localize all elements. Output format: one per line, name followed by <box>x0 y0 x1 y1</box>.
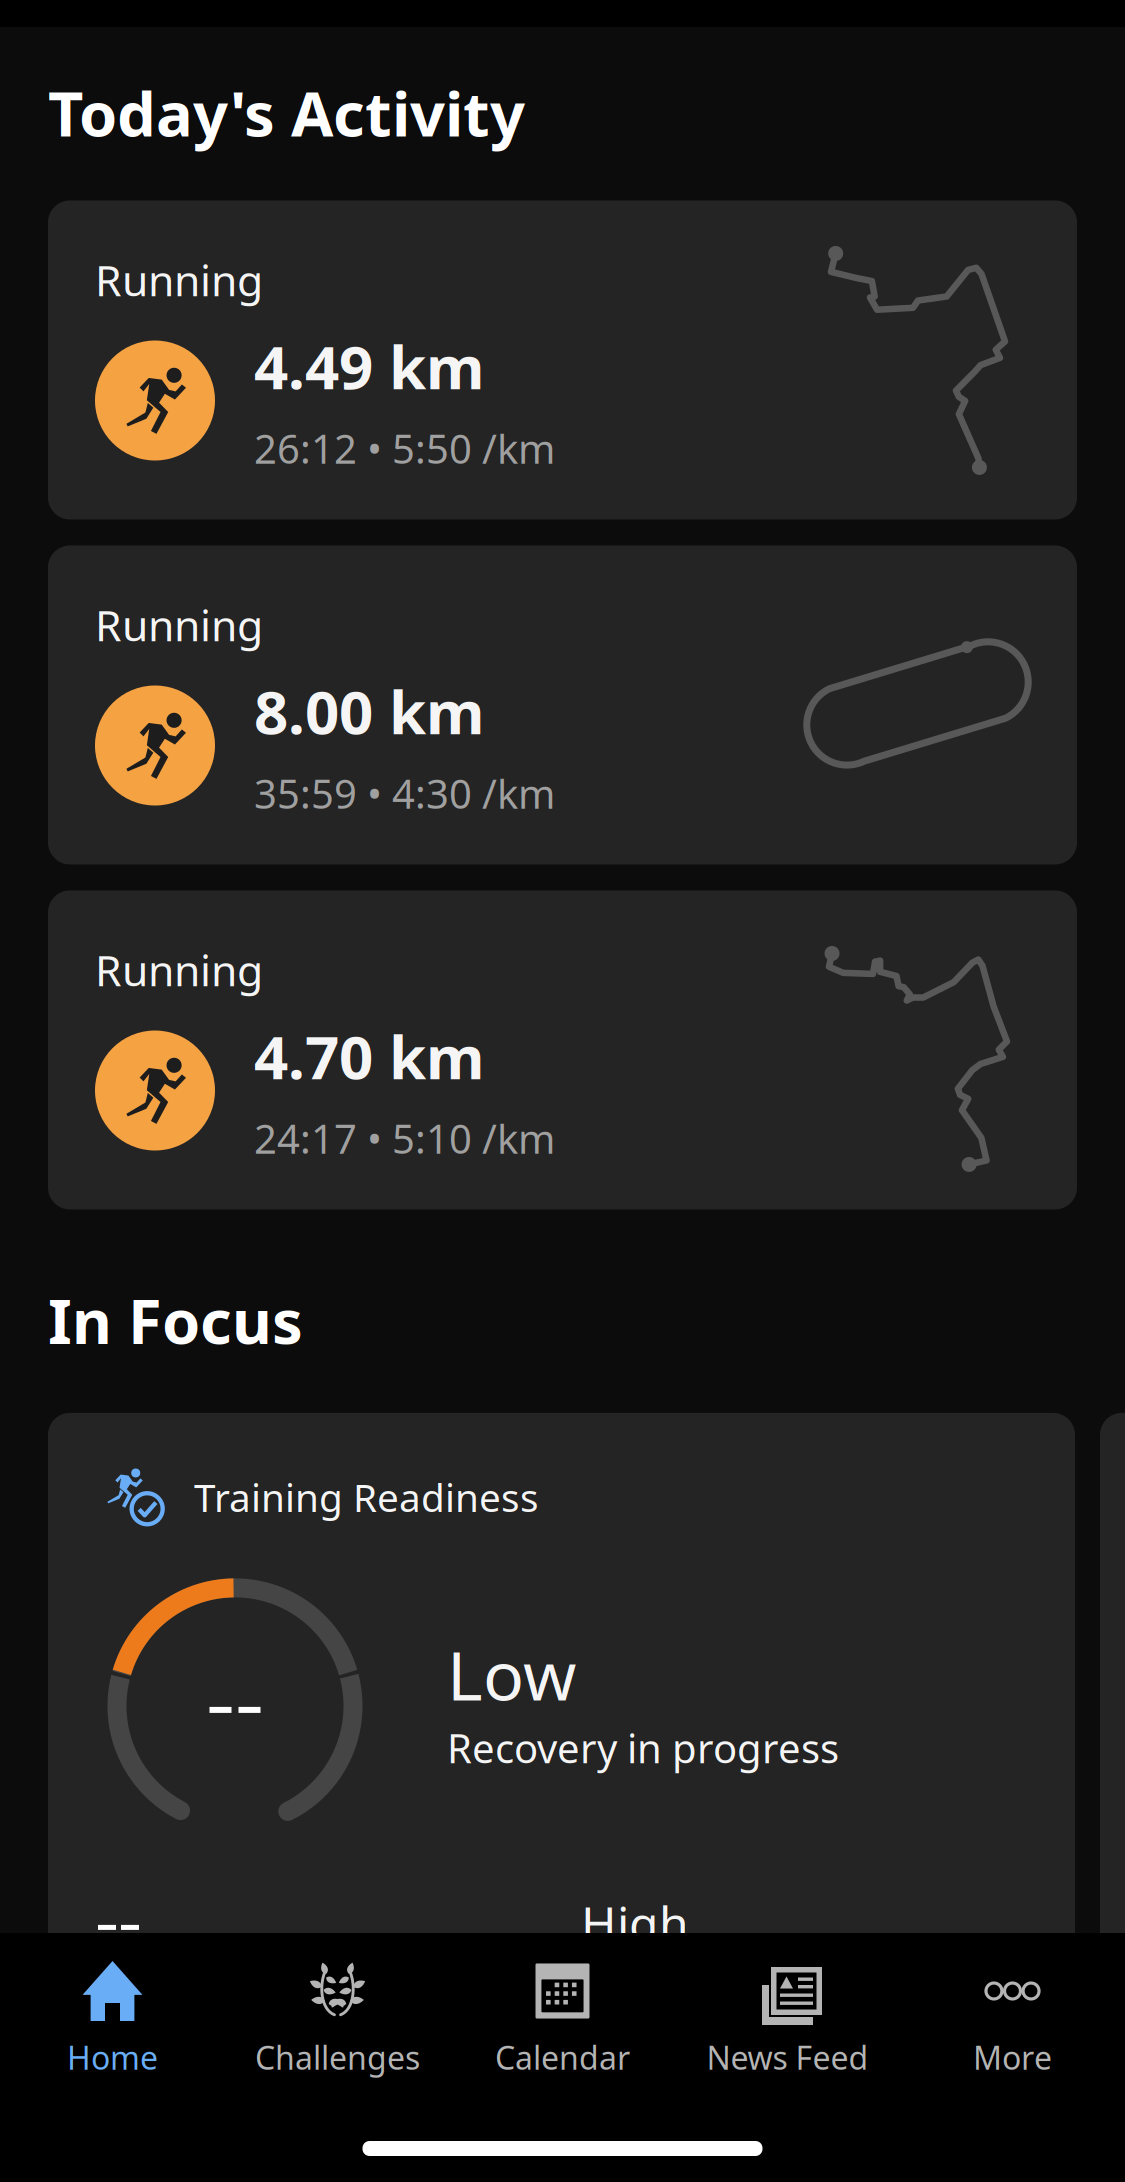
staticText: 24:17 • 5:10 /km <box>254 1112 555 1165</box>
button[interactable]: Calendar <box>450 1933 675 2092</box>
staticText: In Focus <box>48 1279 303 1361</box>
staticText: Low <box>447 1629 576 1719</box>
button[interactable]: Training Readiness <box>48 1413 1075 1973</box>
staticText: High <box>581 1891 689 1955</box>
staticText: 26:12 • 5:50 /km <box>254 422 555 475</box>
button[interactable]: More <box>900 1933 1125 2092</box>
button[interactable]: Running <box>48 545 1077 864</box>
staticText: Home <box>67 2036 158 2078</box>
staticText: Running <box>95 941 263 998</box>
staticText: News Feed <box>706 2036 868 2078</box>
staticText: More <box>973 2036 1052 2078</box>
button[interactable]: Running <box>48 200 1077 519</box>
staticText: Challenges <box>255 2036 420 2078</box>
staticText: 4.70 km <box>254 1016 485 1096</box>
button[interactable]: News Feed <box>675 1933 900 2092</box>
staticText: Recovery in progress <box>447 1721 839 1774</box>
staticText: Calendar <box>495 2036 630 2078</box>
staticText: Training Readiness <box>194 1471 539 1522</box>
button[interactable]: Running <box>48 890 1077 1209</box>
staticText: Today's Activity <box>48 72 525 153</box>
staticText: 8.00 km <box>254 671 485 751</box>
staticText: 4.49 km <box>254 326 485 406</box>
staticText: Running <box>95 596 263 653</box>
staticText: Running <box>95 251 263 308</box>
staticText: 35:59 • 4:30 /km <box>254 767 555 820</box>
button[interactable]: Challenges <box>225 1933 450 2092</box>
button[interactable]: Home <box>0 1933 225 2092</box>
